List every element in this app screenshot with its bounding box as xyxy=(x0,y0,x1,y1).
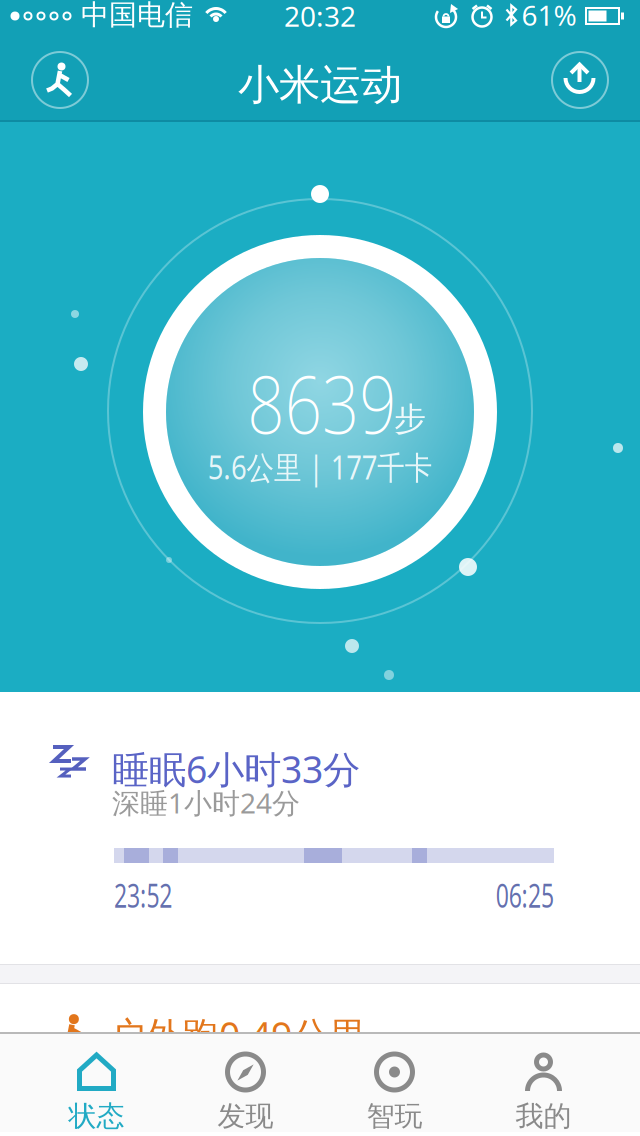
staticText: 深睡1小时24分 xyxy=(112,784,300,821)
button[interactable] xyxy=(30,50,90,110)
button[interactable] xyxy=(550,50,610,110)
button[interactable]: 睡眠6小时33分 xyxy=(0,692,640,964)
staticText: 发现 xyxy=(217,1099,273,1133)
staticText: 61% xyxy=(521,0,576,34)
staticText: 睡眠6小时33分 xyxy=(112,744,360,794)
button[interactable]: 我的 xyxy=(469,1034,618,1132)
button[interactable]: 智玩 xyxy=(320,1034,469,1132)
staticText: 06:25 xyxy=(473,874,554,916)
button[interactable]: 发现 xyxy=(171,1034,320,1132)
staticText: 我的 xyxy=(515,1099,571,1133)
staticText: 20:32 xyxy=(284,0,356,35)
button[interactable]: 户外跑0.49公里 xyxy=(0,984,640,1132)
staticText: 步 xyxy=(394,399,426,439)
staticText: 状态 xyxy=(68,1099,124,1133)
staticText: 中国电信 xyxy=(81,0,193,32)
staticText: 8639 xyxy=(232,351,412,455)
staticText: 小米运动 xyxy=(238,60,402,110)
staticText: 户外跑0.49公里 xyxy=(108,1010,366,1060)
staticText: 23:52 xyxy=(114,874,195,916)
button[interactable]: 状态 xyxy=(22,1034,171,1132)
staticText: 智玩 xyxy=(366,1099,422,1133)
staticText: 5.6公里 | 177千卡 xyxy=(189,446,450,488)
